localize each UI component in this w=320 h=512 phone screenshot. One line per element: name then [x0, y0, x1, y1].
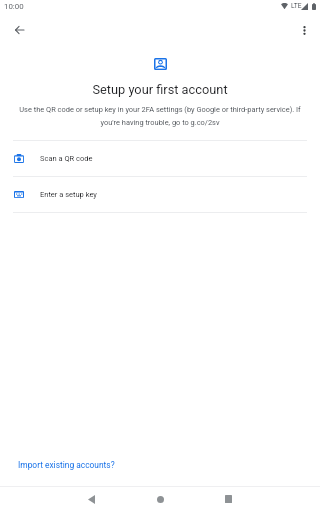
- staticText: Import existing accounts?: [18, 460, 115, 470]
- button[interactable]: Scan a QR code: [0, 141, 320, 176]
- staticText: LTE: [291, 2, 302, 10]
- button[interactable]: Recent apps: [214, 486, 242, 512]
- staticText: Enter a setup key: [40, 190, 97, 199]
- button[interactable]: Back: [77, 486, 105, 512]
- button[interactable]: More options: [289, 22, 320, 38]
- staticText: 10:00: [4, 2, 24, 11]
- staticText: Scan a QR code: [40, 154, 93, 163]
- button[interactable]: Home: [146, 486, 174, 512]
- button[interactable]: Import existing accounts?: [0, 457, 127, 473]
- button[interactable]: Navigate up: [4, 22, 35, 38]
- staticText: Use the QR code or setup key in your 2FA…: [14, 105, 306, 127]
- staticText: Setup your first account: [0, 82, 320, 97]
- button[interactable]: Enter a setup key: [0, 177, 320, 212]
